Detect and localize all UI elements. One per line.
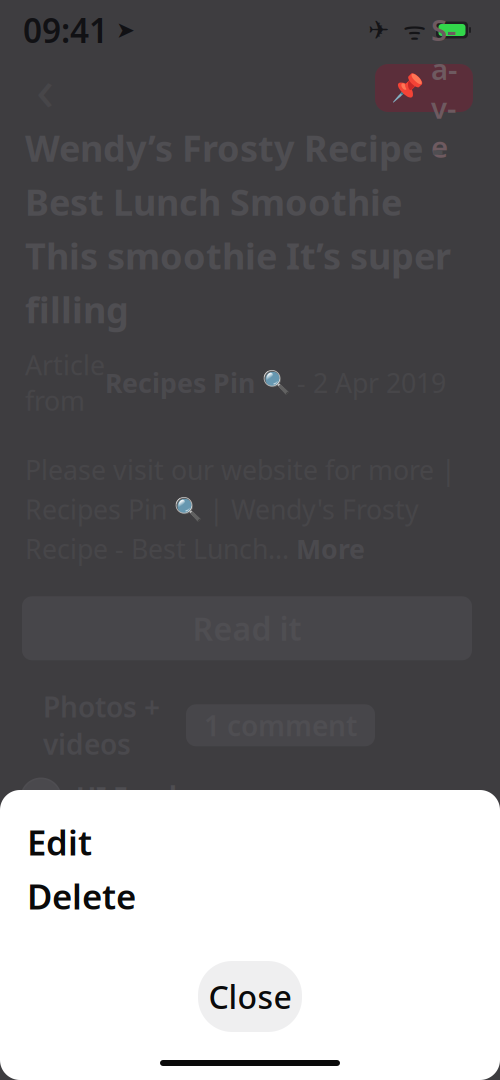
staticText: Edit bbox=[27, 819, 92, 865]
staticText: UI Feed bbox=[76, 778, 177, 814]
staticText: Recipes Pin bbox=[105, 365, 262, 400]
button[interactable]: Close bbox=[198, 961, 302, 1032]
staticText: ➤ bbox=[108, 17, 135, 43]
staticText: 09:41 bbox=[23, 8, 108, 52]
button[interactable]: 📌 bbox=[375, 64, 473, 112]
staticText: Very nice bbox=[76, 821, 194, 858]
button[interactable]: U bbox=[0, 935, 497, 1005]
button[interactable]: Photos + videos bbox=[27, 704, 176, 746]
staticText: ᯤ bbox=[389, 13, 426, 47]
staticText: More bbox=[296, 531, 365, 566]
staticText: 🔍 bbox=[262, 370, 290, 396]
staticText: Close bbox=[208, 975, 291, 1018]
button[interactable]: Delete bbox=[0, 869, 500, 923]
staticText: now bbox=[185, 779, 236, 813]
staticText: ✈ bbox=[368, 16, 389, 44]
staticText: 🔍 bbox=[174, 496, 202, 522]
staticText: 📌 bbox=[391, 73, 424, 103]
staticText: Wendy’s Frosty Recipe - Best Lunch Smoot… bbox=[25, 124, 451, 333]
button[interactable]: Like bbox=[76, 879, 108, 911]
staticText: Save bbox=[431, 10, 457, 166]
staticText: Delete bbox=[27, 873, 136, 919]
staticText: Photos + videos bbox=[43, 688, 160, 762]
button[interactable]: Edit bbox=[0, 815, 500, 869]
staticText: Read it bbox=[192, 607, 301, 649]
staticText: ♥ bbox=[77, 876, 107, 914]
staticText: Add comment bbox=[92, 950, 287, 989]
